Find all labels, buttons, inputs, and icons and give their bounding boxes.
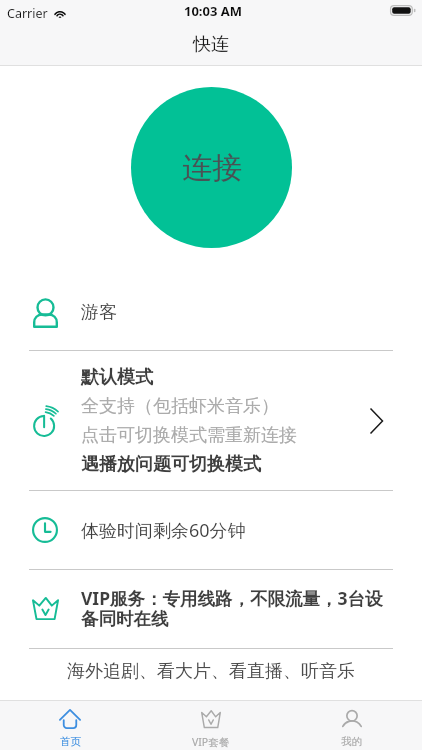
staticText: 点击可切换模式需重新连接	[81, 419, 297, 448]
button[interactable]: 首页	[0, 703, 140, 748]
button[interactable]: 体验时间剩余60分钟	[0, 491, 422, 569]
button[interactable]: 默认模式	[0, 351, 422, 490]
button[interactable]: 我的	[281, 703, 422, 748]
button[interactable]: 游客	[0, 275, 422, 350]
button[interactable]: VIP套餐	[140, 703, 281, 749]
staticText: 首页	[60, 735, 81, 748]
staticText: 体验时间剩余60分钟	[81, 518, 246, 543]
staticText: 默认模式	[81, 361, 153, 390]
staticText: 遇播放问题可切换模式	[81, 448, 261, 477]
staticText: 海外追剧、看大片、看直播、听音乐	[67, 660, 355, 683]
staticText: VIP服务：专用线路，不限流量，3台设备同时在线	[81, 589, 392, 630]
staticText: 10:03 AM	[184, 2, 243, 20]
staticText: 快连	[193, 33, 229, 56]
staticText: Carrier	[7, 5, 48, 22]
staticText: 游客	[81, 301, 117, 324]
staticText: 连接	[182, 149, 242, 187]
button[interactable]: VIP服务：专用线路，不限流量，3台设备同时在线	[0, 570, 422, 648]
staticText: 全支持（包括虾米音乐）	[81, 390, 279, 419]
button[interactable]: 连接	[131, 87, 292, 248]
staticText: VIP套餐	[192, 735, 230, 749]
staticText: 我的	[341, 735, 362, 748]
